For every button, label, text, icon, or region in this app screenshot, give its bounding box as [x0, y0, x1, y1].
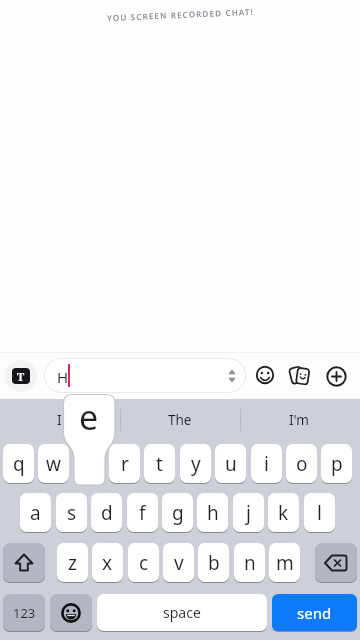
button[interactable]: l — [304, 493, 335, 532]
button[interactable]: h — [197, 493, 228, 532]
staticText: p — [331, 451, 343, 477]
staticText: k — [278, 500, 289, 526]
staticText: t — [156, 451, 163, 477]
staticText: h — [207, 500, 219, 526]
button[interactable]: j — [233, 493, 264, 532]
button[interactable]: H — [44, 358, 246, 393]
button[interactable]: w — [38, 444, 69, 483]
staticText: v — [174, 550, 184, 576]
staticText: z — [68, 550, 77, 576]
staticText: l — [317, 500, 322, 526]
button[interactable]: f — [127, 493, 158, 532]
staticText: j — [246, 500, 251, 526]
button[interactable] — [5, 360, 37, 392]
button[interactable]: g — [162, 493, 193, 532]
staticText: m — [276, 550, 294, 576]
staticText: d — [101, 500, 113, 526]
button[interactable]: k — [268, 493, 299, 532]
staticText: 123 — [13, 604, 36, 622]
staticText: w — [46, 451, 61, 477]
button[interactable] — [288, 364, 312, 388]
staticText: e — [79, 394, 99, 436]
button[interactable]: 123 — [3, 594, 45, 631]
staticText: g — [172, 500, 184, 526]
staticText: i — [264, 451, 269, 477]
button[interactable] — [3, 543, 45, 582]
staticText: YOU SCREEN RECORDED CHAT! — [107, 6, 254, 23]
button[interactable]: b — [198, 543, 229, 582]
staticText: space — [163, 603, 201, 622]
staticText: y — [191, 451, 201, 477]
button[interactable]: q — [3, 444, 34, 483]
button[interactable]: I'm — [240, 408, 358, 432]
button[interactable] — [50, 594, 92, 631]
button[interactable]: send — [272, 594, 357, 631]
staticText: x — [102, 550, 113, 576]
button[interactable]: n — [234, 543, 265, 582]
staticText: send — [297, 603, 332, 623]
staticText: The — [168, 411, 192, 429]
button[interactable]: s — [56, 493, 87, 532]
staticText: b — [208, 550, 220, 576]
button[interactable]: r — [109, 444, 140, 483]
staticText: a — [30, 500, 41, 526]
staticText: I'm — [289, 411, 309, 429]
button[interactable]: u — [215, 444, 246, 483]
button[interactable] — [315, 543, 357, 582]
button[interactable]: i — [251, 444, 282, 483]
button[interactable]: d — [91, 493, 122, 532]
button[interactable]: t — [144, 444, 175, 483]
button[interactable]: o — [286, 444, 317, 483]
staticText: o — [296, 451, 308, 477]
staticText: I — [57, 411, 62, 429]
staticText: q — [13, 451, 25, 477]
staticText: s — [67, 500, 77, 526]
staticText: n — [244, 550, 256, 576]
button[interactable]: z — [57, 543, 88, 582]
button[interactable]: v — [163, 543, 194, 582]
button[interactable]: a — [20, 493, 51, 532]
staticText: r — [121, 451, 129, 477]
button[interactable] — [255, 365, 275, 385]
staticText: f — [139, 500, 146, 526]
button[interactable]: m — [269, 543, 300, 582]
staticText: T — [17, 369, 25, 384]
staticText: u — [225, 451, 237, 477]
staticText: H — [57, 367, 69, 387]
button[interactable] — [326, 366, 347, 387]
button[interactable]: p — [321, 444, 352, 483]
button[interactable]: c — [128, 543, 159, 582]
button[interactable]: x — [92, 543, 123, 582]
button[interactable]: The — [120, 408, 240, 432]
staticText: c — [139, 550, 149, 576]
button[interactable]: y — [180, 444, 211, 483]
button[interactable]: space — [97, 594, 267, 631]
